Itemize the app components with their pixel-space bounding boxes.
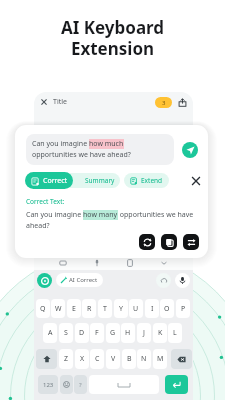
button[interactable]: J xyxy=(137,323,151,343)
staticText: G xyxy=(110,328,116,338)
staticText: L xyxy=(173,328,177,338)
button[interactable]: 123 xyxy=(38,375,58,394)
button[interactable]: B xyxy=(122,349,136,369)
staticText: Extend xyxy=(141,176,163,185)
button[interactable]: U xyxy=(129,299,143,318)
button[interactable]: ? xyxy=(74,375,87,394)
staticText: J xyxy=(143,328,145,338)
staticText: B xyxy=(127,354,132,364)
button[interactable]: Tool 3 xyxy=(160,259,168,267)
staticText: I xyxy=(151,304,154,314)
button[interactable]: Send xyxy=(182,142,198,158)
button[interactable]: D xyxy=(75,323,89,343)
staticText: Can you imagine xyxy=(26,210,83,220)
button[interactable]: X xyxy=(75,349,89,369)
staticText: 3 xyxy=(162,99,166,107)
button[interactable]: Credits xyxy=(155,97,172,108)
staticText: 123 xyxy=(43,381,54,389)
button[interactable]: A xyxy=(43,323,57,343)
button[interactable]: Tool 0 xyxy=(59,259,67,267)
staticText: C xyxy=(95,354,100,364)
button[interactable]: Backspace xyxy=(171,349,192,369)
staticText: V xyxy=(111,354,116,364)
button[interactable]: Z xyxy=(59,349,73,369)
staticText: AI Correct xyxy=(69,276,98,284)
staticText: opportunities we have ahead? xyxy=(32,150,131,160)
staticText: D xyxy=(79,328,85,338)
staticText: Q xyxy=(40,304,46,314)
button[interactable]: Q xyxy=(36,299,50,318)
staticText: F xyxy=(95,328,99,338)
staticText: opportunities we have xyxy=(118,210,194,220)
button[interactable]: K xyxy=(153,323,167,343)
staticText: R xyxy=(87,304,92,314)
button[interactable]: Y xyxy=(114,299,128,318)
button[interactable]: AI Correct xyxy=(56,273,103,287)
button[interactable]: P xyxy=(176,299,190,318)
staticText: Z xyxy=(64,354,69,364)
button[interactable]: V xyxy=(106,349,120,369)
staticText: how many xyxy=(83,210,118,220)
staticText: W xyxy=(55,304,62,314)
staticText: Title xyxy=(53,97,67,107)
button[interactable]: L xyxy=(168,323,182,343)
button[interactable]: E xyxy=(67,299,81,318)
button[interactable]: W xyxy=(51,299,65,318)
staticText: E xyxy=(72,304,76,314)
button[interactable]: Tool 2 xyxy=(126,259,134,267)
button[interactable]: Shift xyxy=(36,349,57,369)
button[interactable]: Extend xyxy=(124,173,169,188)
staticText: N xyxy=(141,354,147,364)
button[interactable]: Tool 1 xyxy=(93,259,101,267)
staticText: S xyxy=(64,328,68,338)
staticText: X xyxy=(80,354,85,364)
staticText: Correct Text: xyxy=(26,197,65,206)
staticText: Summary xyxy=(85,176,115,185)
button[interactable]: Summary xyxy=(62,173,120,188)
staticText: Can you imagine xyxy=(32,139,89,149)
button[interactable]: Enter xyxy=(165,375,188,394)
staticText: AI Keyboard Extension xyxy=(0,16,225,60)
staticText: O xyxy=(164,304,170,314)
button[interactable]: M xyxy=(153,349,167,369)
button[interactable]: Share xyxy=(178,98,187,107)
button[interactable]: Copy xyxy=(161,234,177,250)
button[interactable]: T xyxy=(98,299,112,318)
button[interactable]: Correct xyxy=(25,172,73,189)
button[interactable]: O xyxy=(160,299,174,318)
button[interactable]: Regenerate xyxy=(139,234,155,250)
button[interactable]: Dismiss xyxy=(189,174,203,188)
staticText: Correct xyxy=(43,176,68,186)
staticText: T xyxy=(103,304,107,314)
button[interactable]: Close xyxy=(40,98,48,106)
staticText: A xyxy=(48,328,53,338)
button[interactable]: Replace xyxy=(183,234,199,250)
button[interactable]: R xyxy=(82,299,96,318)
button[interactable]: Space xyxy=(89,375,159,394)
button[interactable]: N xyxy=(137,349,151,369)
button[interactable]: G xyxy=(106,323,120,343)
staticText: K xyxy=(158,328,163,338)
staticText: M xyxy=(157,354,164,364)
staticText: H xyxy=(125,328,131,338)
staticText: how much xyxy=(89,139,124,149)
button[interactable]: Undo xyxy=(156,273,171,288)
staticText: U xyxy=(133,304,139,314)
staticText: ? xyxy=(79,381,82,389)
button[interactable]: F xyxy=(90,323,104,343)
staticText: ahead? xyxy=(26,221,50,231)
button[interactable]: Voice input xyxy=(175,273,190,288)
button[interactable]: I xyxy=(145,299,159,318)
button[interactable]: S xyxy=(59,323,73,343)
button[interactable]: AI assistant xyxy=(37,273,52,288)
button[interactable]: Emoji xyxy=(60,375,73,394)
button[interactable]: H xyxy=(121,323,135,343)
staticText: P xyxy=(181,304,186,314)
button[interactable]: C xyxy=(90,349,104,369)
staticText: Y xyxy=(119,304,123,314)
